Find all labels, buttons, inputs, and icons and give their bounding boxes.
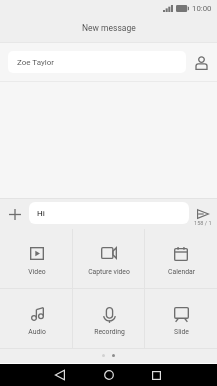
staticText: Hi bbox=[37, 209, 45, 218]
button[interactable]: Capture video bbox=[73, 229, 145, 289]
staticText: 10:00 bbox=[192, 4, 212, 13]
button[interactable]: Recent apps bbox=[134, 364, 179, 386]
button[interactable]: Back bbox=[37, 364, 82, 386]
button[interactable]: Slide bbox=[145, 289, 217, 349]
staticText: Video bbox=[28, 268, 46, 276]
staticText: Slide bbox=[174, 328, 189, 336]
button[interactable]: Zoe Taylor bbox=[8, 51, 186, 73]
button[interactable]: Video bbox=[0, 229, 73, 289]
staticText: Zoe Taylor bbox=[17, 58, 54, 67]
button[interactable]: Hi bbox=[29, 202, 189, 224]
button[interactable]: Calendar bbox=[145, 229, 217, 289]
button[interactable]: Home bbox=[86, 364, 131, 386]
staticText: Recording bbox=[94, 328, 125, 336]
staticText: New message bbox=[82, 23, 136, 33]
staticText: Calendar bbox=[168, 268, 195, 276]
button[interactable]: Send bbox=[191, 203, 214, 227]
staticText: Audio bbox=[28, 328, 46, 336]
staticText: Capture video bbox=[88, 268, 130, 276]
button[interactable]: Audio bbox=[0, 289, 73, 349]
button[interactable]: Choose contact bbox=[190, 52, 212, 74]
button[interactable]: Recording bbox=[73, 289, 145, 349]
button[interactable]: Add attachment bbox=[4, 203, 26, 225]
staticText: 158 / 1 bbox=[194, 220, 212, 227]
